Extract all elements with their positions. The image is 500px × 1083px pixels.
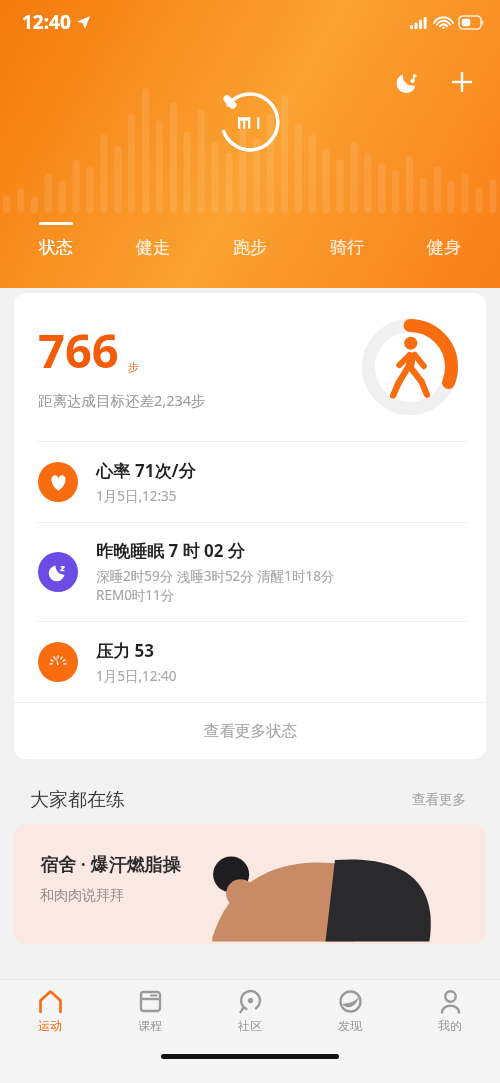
staticText: 发现 bbox=[338, 1018, 362, 1033]
staticText: 状态 bbox=[39, 237, 73, 258]
staticText: 深睡2时59分 浅睡3时52分 清醒1时18分 bbox=[96, 567, 335, 585]
button[interactable]: 昨晚睡眠 7 时 02 分 bbox=[14, 523, 486, 621]
button[interactable]: 心率 bbox=[14, 442, 486, 522]
button[interactable]: 发现 bbox=[300, 980, 400, 1042]
staticText: 查看更多 bbox=[412, 791, 466, 808]
staticText: 健身 bbox=[427, 237, 461, 258]
button[interactable]: 状态 bbox=[8, 222, 104, 278]
button[interactable]: 课程 bbox=[100, 980, 200, 1042]
staticText: 12:40 bbox=[22, 9, 71, 35]
button[interactable]: 运动 bbox=[0, 980, 100, 1042]
staticText: 大家都在练 bbox=[30, 788, 125, 812]
button[interactable]: 骑行 bbox=[298, 222, 395, 278]
staticText: REM0时11分 bbox=[96, 586, 175, 604]
staticText: 压力 53 bbox=[96, 639, 154, 662]
staticText: 步 bbox=[128, 360, 139, 374]
button[interactable]: 我的 bbox=[400, 980, 500, 1042]
staticText: 766 bbox=[38, 318, 119, 382]
staticText: 宿舍 · 爆汗燃脂操 bbox=[40, 852, 181, 877]
button[interactable]: Add device bbox=[442, 62, 482, 102]
button[interactable]: 健走 bbox=[104, 222, 201, 278]
staticText: 我的 bbox=[438, 1018, 462, 1033]
staticText: 心率 bbox=[96, 459, 135, 482]
button[interactable]: 社区 bbox=[200, 980, 300, 1042]
button[interactable]: 宿舍 · 爆汗燃脂操 bbox=[14, 824, 486, 944]
button[interactable]: 健身 bbox=[395, 222, 492, 278]
staticText: 和肉肉说拜拜 bbox=[40, 887, 124, 905]
staticText: 跑步 bbox=[233, 237, 267, 258]
staticText: 骑行 bbox=[330, 237, 364, 258]
staticText: 1月5日,12:35 bbox=[96, 487, 177, 505]
staticText: 1月5日,12:40 bbox=[96, 667, 177, 685]
staticText: 查看更多状态 bbox=[204, 721, 297, 741]
staticText: 运动 bbox=[38, 1018, 62, 1033]
staticText: 71次/分 bbox=[135, 459, 196, 482]
button[interactable]: 跑步 bbox=[201, 222, 298, 278]
staticText: 距离达成目标还差2,234步 bbox=[38, 390, 206, 410]
button[interactable]: 查看更多状态 bbox=[14, 703, 486, 759]
button[interactable]: 查看更多 bbox=[408, 787, 470, 812]
button[interactable]: Mi Band bbox=[216, 88, 284, 156]
button[interactable]: Sleep music bbox=[388, 62, 428, 102]
staticText: 昨晚睡眠 7 时 02 分 bbox=[96, 539, 245, 562]
staticText: 课程 bbox=[138, 1018, 162, 1033]
button[interactable]: 压力 53 bbox=[14, 622, 486, 702]
button[interactable]: 766 bbox=[14, 293, 486, 441]
staticText: 健走 bbox=[136, 237, 170, 258]
staticText: 社区 bbox=[238, 1018, 262, 1033]
